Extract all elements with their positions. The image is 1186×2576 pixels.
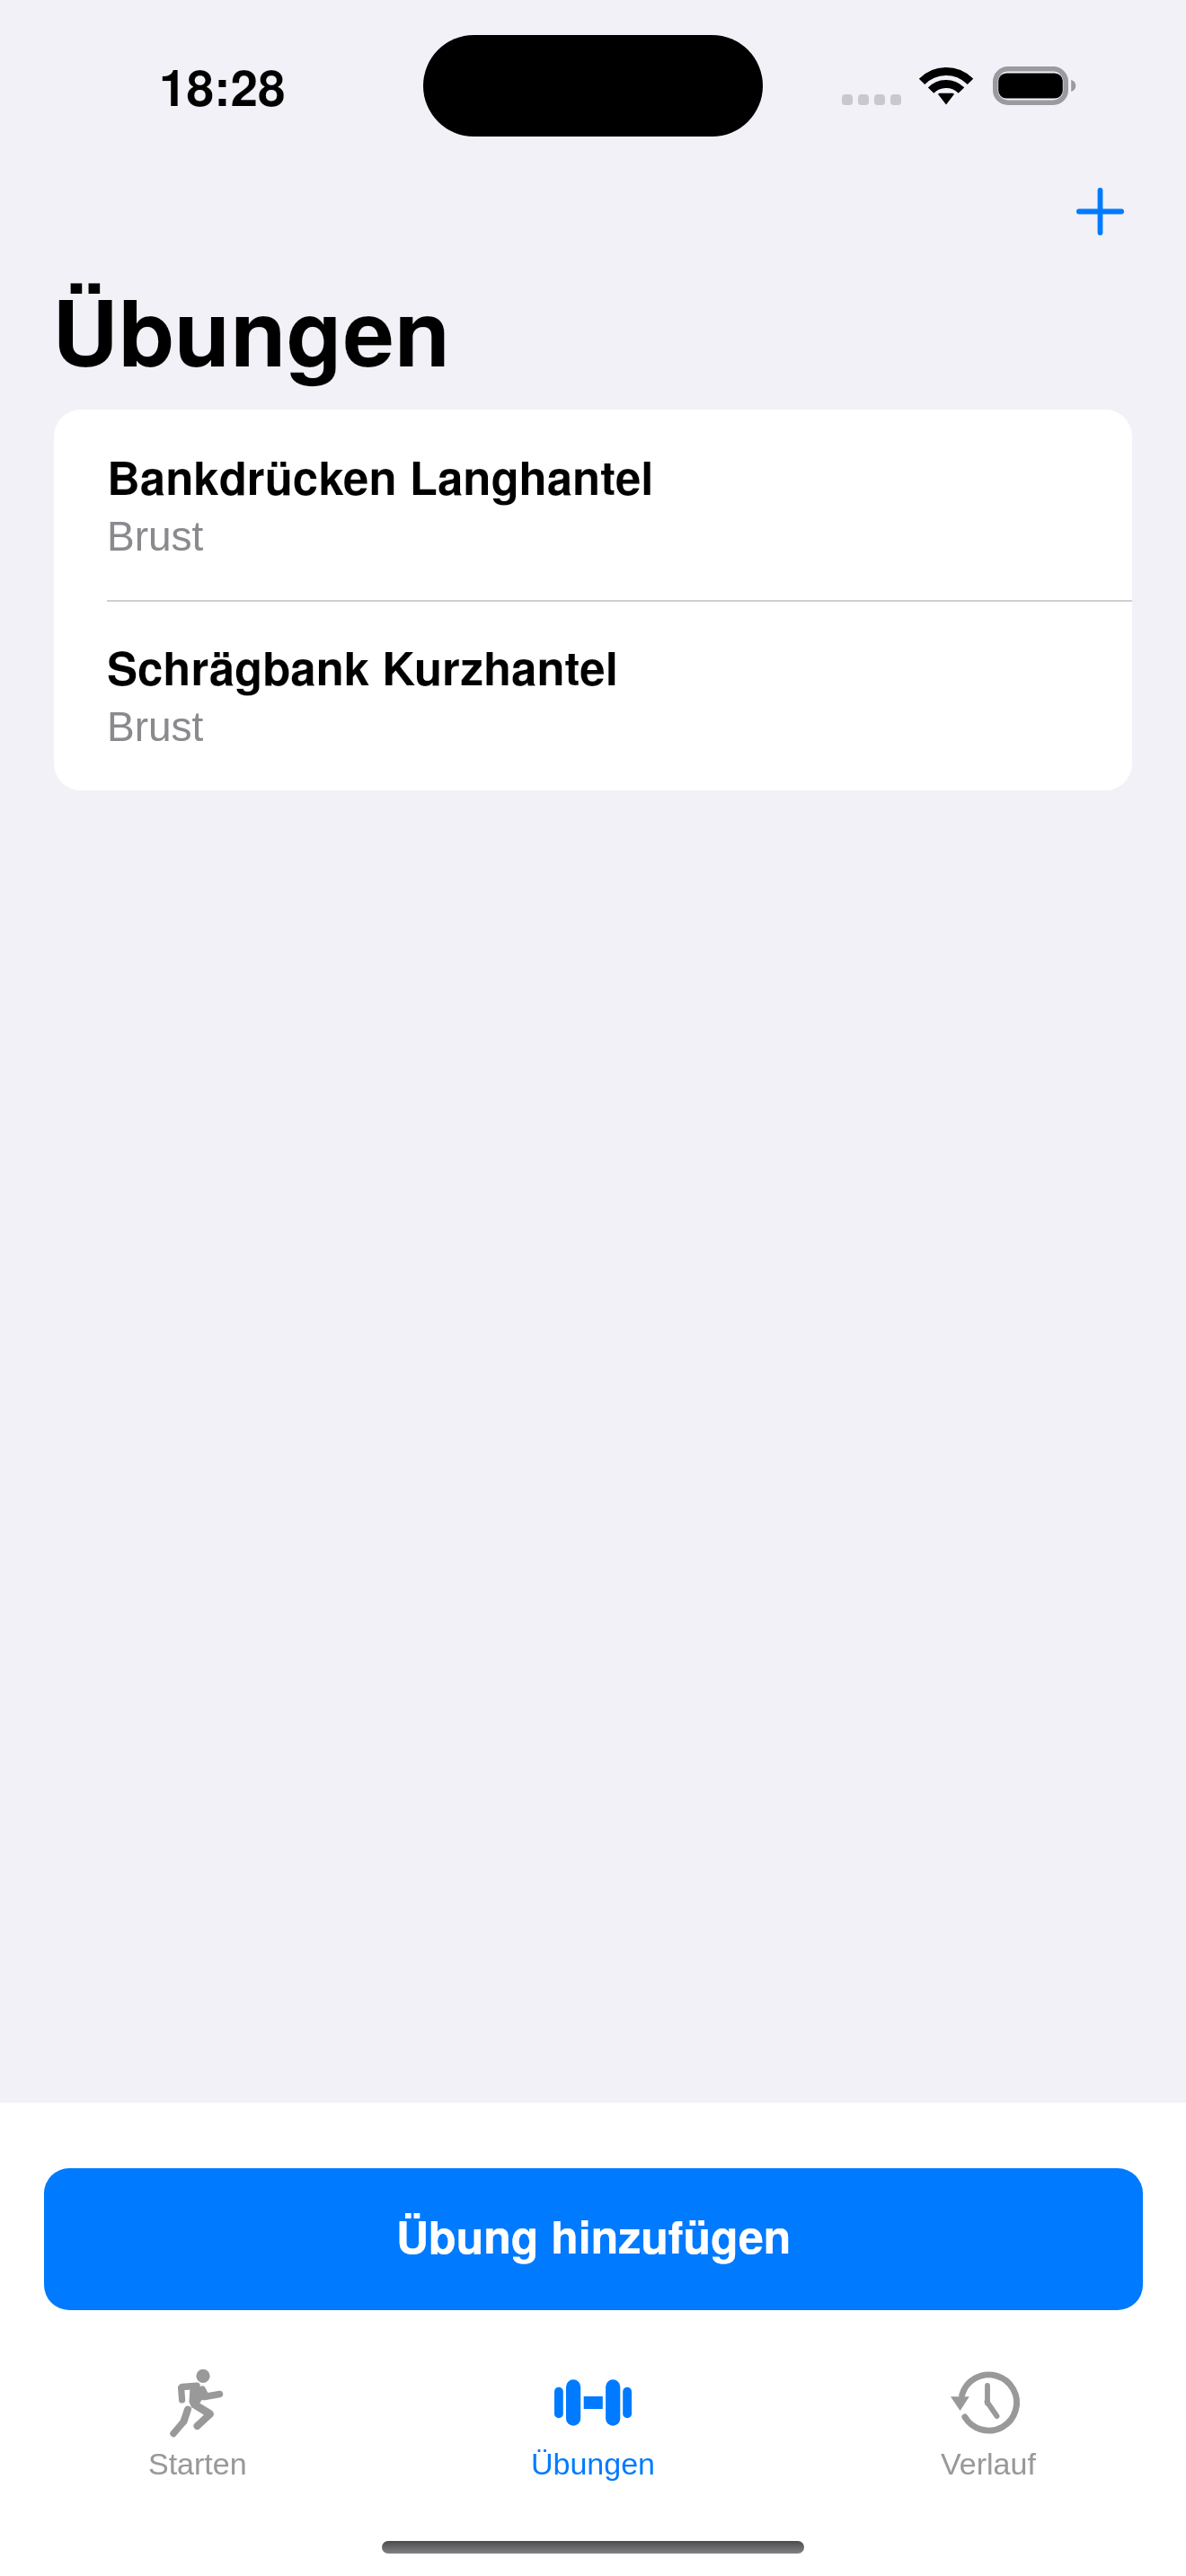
- staticText: Übung hinzufügen: [396, 2203, 792, 2268]
- staticText: Übungen: [52, 263, 450, 394]
- staticText: Schrägbank Kurzhantel: [107, 634, 618, 700]
- staticText: Verlauf: [941, 2447, 1036, 2481]
- button[interactable]: Starten: [0, 2344, 395, 2506]
- button[interactable]: Übung hinzufügen: [44, 2168, 1143, 2310]
- staticText: Brust: [107, 703, 204, 749]
- staticText: Übungen: [531, 2447, 656, 2481]
- staticText: Bankdrücken Langhantel: [107, 444, 654, 509]
- button[interactable]: Bankdrücken Langhantel: [54, 410, 1132, 600]
- button[interactable]: Übung hinzufügen: [1055, 166, 1145, 256]
- button[interactable]: Verlauf: [791, 2344, 1186, 2506]
- button[interactable]: Übungen: [395, 2344, 791, 2506]
- staticText: Starten: [148, 2447, 247, 2481]
- staticText: Brust: [107, 513, 204, 559]
- staticText: 18:28: [159, 50, 286, 121]
- button[interactable]: Schrägbank Kurzhantel: [54, 600, 1132, 790]
